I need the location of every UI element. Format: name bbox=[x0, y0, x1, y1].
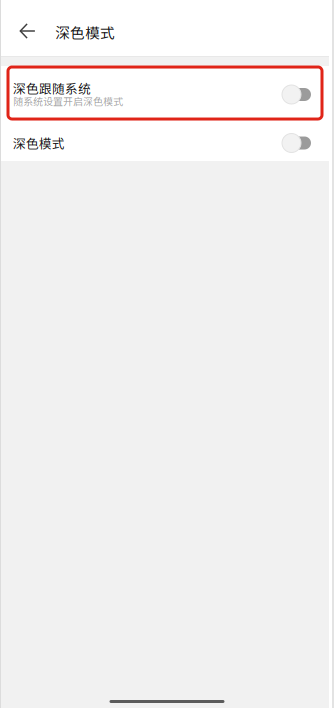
staticText: 随系统设置开启深色模式 bbox=[13, 94, 123, 108]
button[interactable]: 深色跟随系统 bbox=[0, 66, 334, 117]
button[interactable]: Back bbox=[0, 4, 50, 60]
staticText: 深色跟随系统 bbox=[13, 79, 91, 97]
staticText: 深色模式 bbox=[13, 134, 65, 152]
staticText: 深色模式 bbox=[55, 21, 115, 43]
button[interactable]: 深色模式 bbox=[0, 117, 334, 161]
